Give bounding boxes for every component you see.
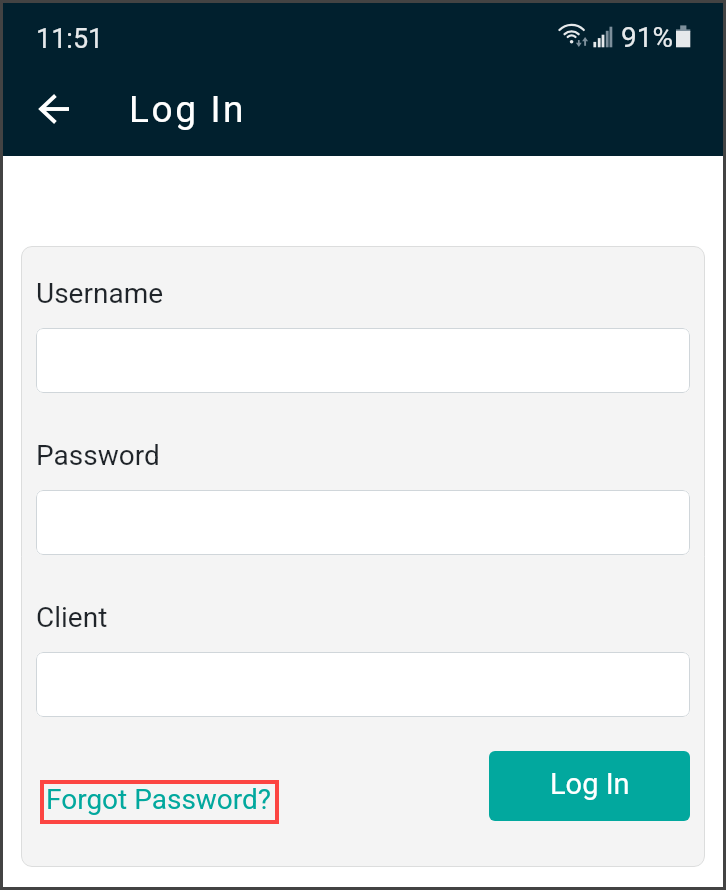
staticText: 11:51 (36, 23, 104, 55)
button[interactable]: Log In (489, 751, 690, 821)
staticText: Forgot Password? (46, 783, 272, 816)
button[interactable]: Forgot Password? (40, 780, 279, 824)
staticText: Log In (550, 767, 630, 801)
staticText: Log In (129, 88, 247, 131)
button[interactable]: Password input (36, 490, 690, 555)
button[interactable]: Client input (36, 652, 690, 717)
staticText: Username (36, 277, 164, 310)
staticText: Client (36, 601, 108, 634)
button[interactable]: Username input (36, 328, 690, 393)
staticText: Password (36, 439, 160, 472)
button[interactable]: Back (24, 79, 84, 139)
staticText: 91% (621, 21, 673, 54)
